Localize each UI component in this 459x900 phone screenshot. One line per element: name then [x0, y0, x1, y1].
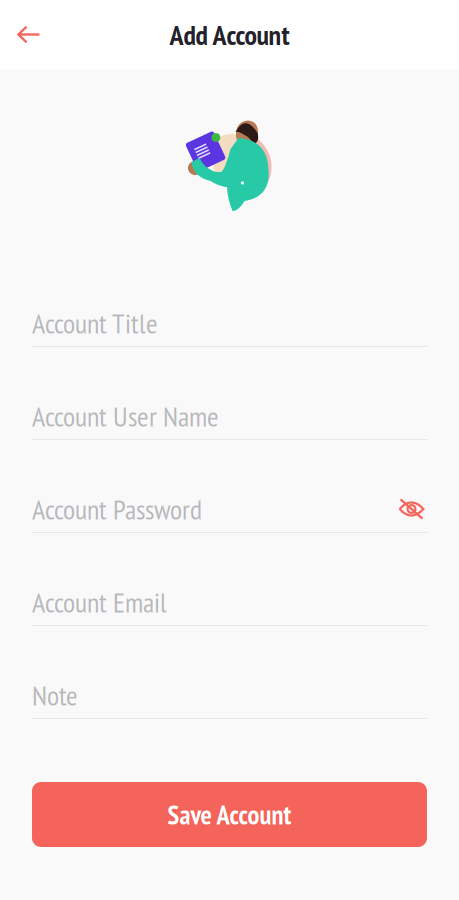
staticText: Account Password [32, 491, 202, 527]
staticText: Account Title [32, 305, 158, 341]
staticText: Save Account [167, 797, 291, 832]
staticText: Account Email [32, 584, 167, 620]
staticText: Add Account [169, 16, 289, 53]
button[interactable]: Show password [396, 492, 427, 526]
staticText: Note [32, 677, 78, 713]
staticText: Account User Name [32, 398, 219, 434]
button[interactable]: Save Account [0, 782, 459, 847]
button[interactable]: Back [0, 11, 55, 57]
